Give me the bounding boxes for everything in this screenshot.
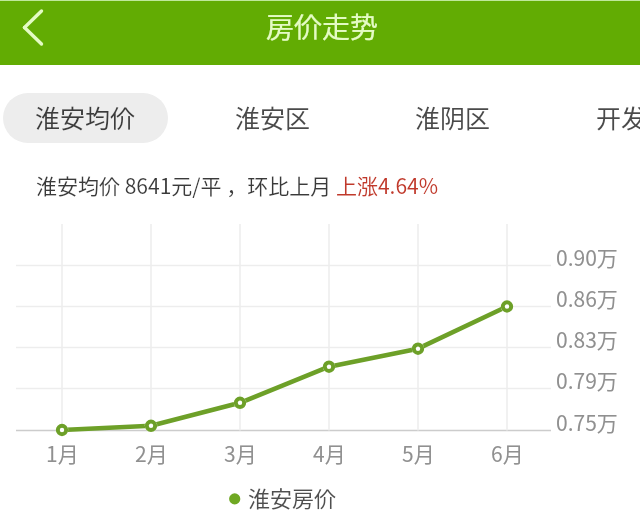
staticText: 淮安房价 — [248, 481, 337, 513]
button[interactable]: 开发区 — [596, 93, 640, 143]
staticText: 0.83万 — [556, 324, 618, 354]
staticText: 淮阴区 — [415, 99, 491, 135]
staticText: 淮安均价 8641元/平 ，环比上月 上涨4.64% — [36, 170, 439, 200]
staticText: 淮安区 — [235, 99, 311, 135]
staticText: 开发区 — [596, 99, 640, 135]
staticText: 6月 — [491, 438, 524, 468]
button[interactable]: 淮阴区 — [415, 93, 491, 143]
staticText: 5月 — [402, 438, 435, 468]
button[interactable]: Back — [0, 0, 68, 65]
staticText: 0.90万 — [556, 242, 618, 272]
staticText: 0.75万 — [556, 407, 618, 437]
staticText: 0.86万 — [556, 283, 618, 313]
button[interactable]: 淮安均价 — [3, 93, 168, 143]
staticText: 2月 — [135, 438, 168, 468]
staticText: 淮安均价 — [35, 99, 136, 135]
staticText: 4月 — [313, 438, 346, 468]
staticText: 3月 — [224, 438, 257, 468]
staticText: 1月 — [46, 438, 79, 468]
staticText: 0.79万 — [556, 365, 618, 395]
button[interactable]: 淮安区 — [235, 93, 311, 143]
staticText: 房价走势 — [266, 6, 379, 47]
